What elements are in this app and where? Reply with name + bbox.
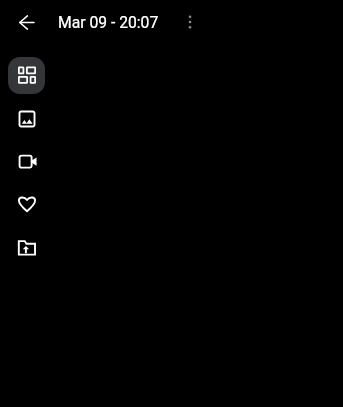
button[interactable]: Dashboard — [8, 57, 45, 94]
button[interactable]: Favourites — [8, 185, 45, 222]
button[interactable]: More options — [172, 4, 208, 40]
button[interactable]: Videos — [8, 143, 45, 180]
button[interactable]: Back — [7, 3, 45, 41]
button[interactable]: Upload — [8, 229, 45, 266]
button[interactable]: Photos — [8, 100, 45, 137]
staticText: Mar 09 - 20:07 — [58, 13, 159, 31]
